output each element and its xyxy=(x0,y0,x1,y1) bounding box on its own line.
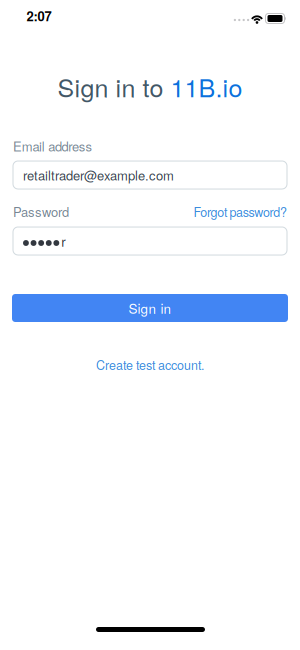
staticText: 11B.io xyxy=(170,69,242,104)
button[interactable]: Sign in xyxy=(12,294,288,322)
staticText: 2:07 xyxy=(26,7,51,25)
staticText: Sign in to xyxy=(57,69,170,104)
staticText: Email address xyxy=(13,137,92,155)
button[interactable]: Password xyxy=(13,227,287,255)
staticText: Sign in xyxy=(128,298,171,318)
staticText: r xyxy=(61,231,65,251)
staticText: Create test account. xyxy=(96,356,204,373)
button[interactable]: Create test account. xyxy=(96,356,204,373)
staticText: Forgot password? xyxy=(193,203,287,220)
staticText: Password xyxy=(13,202,69,221)
button[interactable]: Email address xyxy=(13,161,287,189)
button[interactable]: Forgot password? xyxy=(193,203,287,220)
staticText: retailtrader@example.com xyxy=(23,166,174,184)
